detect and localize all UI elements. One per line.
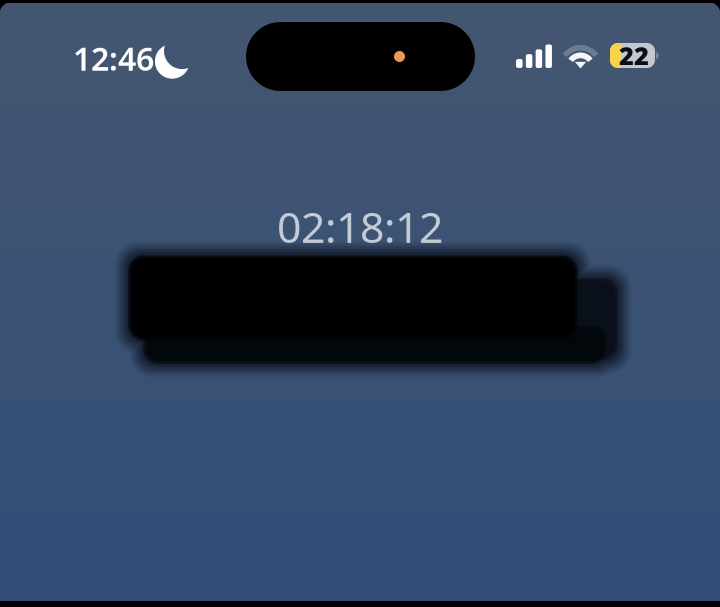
staticText: 22 [619, 39, 649, 72]
staticText: 02:18:12 [277, 198, 443, 255]
staticText: 12:46 [73, 37, 154, 79]
